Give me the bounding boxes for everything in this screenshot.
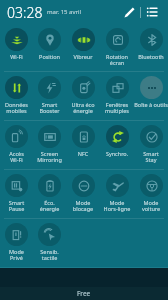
staticText: Smart Pause [0, 199, 33, 213]
staticText: Mode Hors-ligne [100, 199, 134, 213]
staticText: Boîte à outils [134, 101, 168, 108]
staticText: Bluetooth [134, 53, 168, 60]
button[interactable]: Free [0, 287, 168, 300]
button[interactable]: Éco. énergie [33, 170, 66, 218]
button[interactable]: Ultra éco énergie [66, 72, 100, 120]
staticText: Position [33, 53, 66, 60]
staticText: mar. 15 avril [47, 8, 82, 16]
staticText: 03:28 [7, 3, 43, 22]
button[interactable]: Sensib. tactile [33, 219, 66, 267]
staticText: Sensib. tactile [33, 248, 66, 262]
staticText: Smart Booster [33, 101, 66, 115]
staticText: Éco. énergie [33, 199, 66, 213]
staticText: Vibreur [66, 53, 100, 60]
button[interactable]: Rotation écran [100, 24, 134, 71]
staticText: Accès Wi-Fi [0, 150, 33, 164]
button[interactable]: Fenêtres multiples [100, 72, 134, 120]
button[interactable]: Liste des paramètres [141, 1, 163, 23]
button[interactable]: Wi-Fi [0, 24, 33, 71]
button[interactable]: Mode blocage [66, 170, 100, 218]
button[interactable]: Smart Pause [0, 170, 33, 218]
staticText: Screen Mirroring [33, 150, 66, 164]
button[interactable]: Données mobiles [0, 72, 33, 120]
button[interactable]: Smart Stay [134, 121, 168, 169]
staticText: Synchro. [100, 150, 134, 157]
staticText: Mode blocage [66, 199, 100, 213]
staticText: Free [77, 289, 91, 298]
button[interactable]: Boîte à outils [134, 72, 168, 120]
staticText: Ultra éco énergie [66, 101, 100, 115]
button[interactable]: Mode Hors-ligne [100, 170, 134, 218]
staticText: Fenêtres multiples [100, 101, 134, 115]
staticText: Mode voiture [134, 199, 168, 213]
button[interactable]: Bluetooth [134, 24, 168, 71]
button[interactable]: Vibreur [66, 24, 100, 71]
button[interactable]: Position [33, 24, 66, 71]
staticText: NFC [66, 150, 100, 157]
button[interactable]: NFC [66, 121, 100, 169]
button[interactable]: Mode Privé [0, 219, 33, 267]
button[interactable]: Mode voiture [134, 170, 168, 218]
staticText: Smart Stay [134, 150, 168, 164]
staticText: Wi-Fi [0, 53, 33, 60]
staticText: Données mobiles [0, 101, 33, 115]
button[interactable]: Smart Booster [33, 72, 66, 120]
staticText: Mode Privé [0, 248, 33, 262]
button[interactable]: Synchro. [100, 121, 134, 169]
button[interactable]: Screen Mirroring [33, 121, 66, 169]
staticText: Rotation écran [100, 53, 134, 67]
button[interactable]: Modifier [118, 1, 140, 23]
button[interactable]: Accès Wi-Fi [0, 121, 33, 169]
